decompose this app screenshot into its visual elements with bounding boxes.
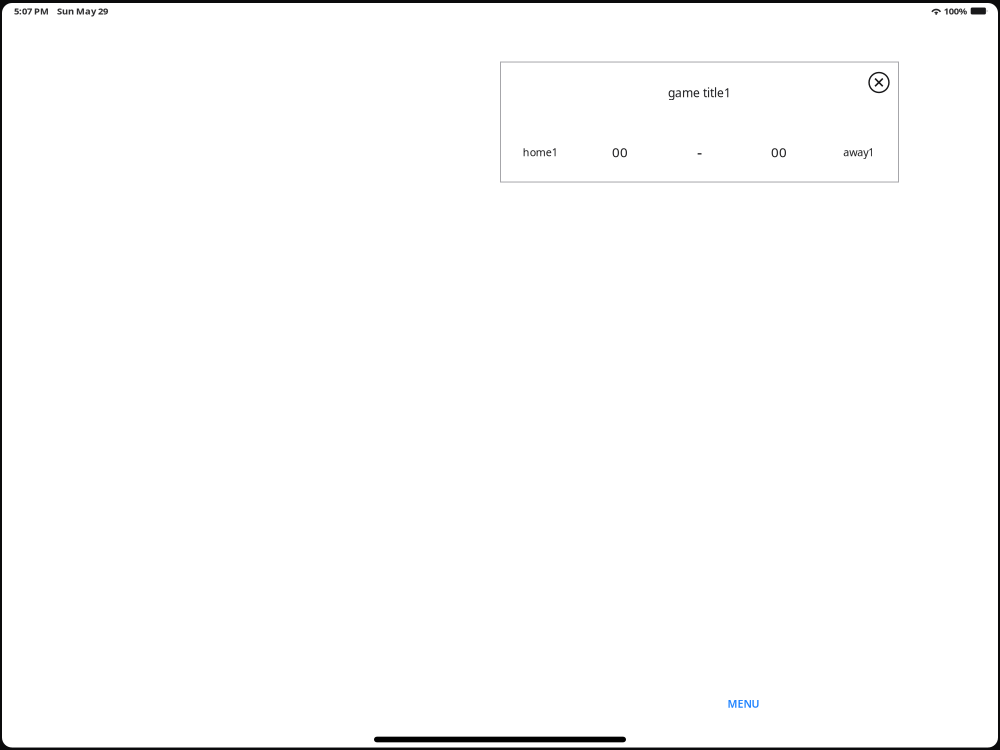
staticText: game title1 <box>668 84 731 100</box>
staticText: 5:07 PM <box>14 5 49 17</box>
staticText: 00 <box>771 143 787 161</box>
staticText: 100% <box>944 5 967 17</box>
button[interactable]: MENU <box>713 690 773 716</box>
staticText: 00 <box>612 143 628 161</box>
staticText: MENU <box>727 696 759 711</box>
staticText: Sun May 29 <box>57 5 108 17</box>
staticText: home1 <box>523 145 558 159</box>
staticText: - <box>697 141 702 163</box>
staticText: away1 <box>843 145 874 159</box>
button[interactable]: Close <box>864 67 894 97</box>
